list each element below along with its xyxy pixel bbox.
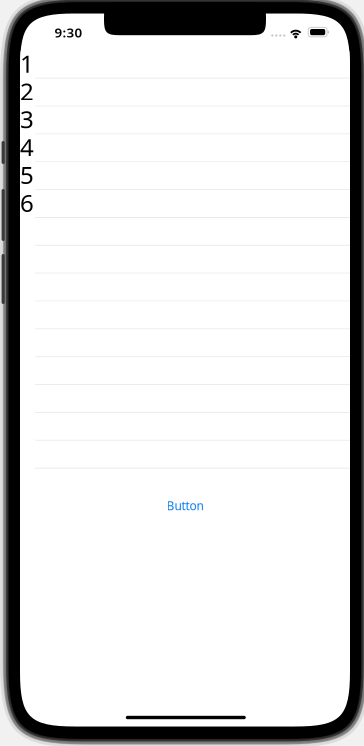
button[interactable]: 4 [20,134,350,162]
staticText: 3 [20,103,34,135]
button[interactable]: 1 [20,51,350,79]
staticText: 4 [20,131,34,163]
staticText: Button [166,498,203,513]
button[interactable]: 3 [20,107,350,134]
button[interactable]: 6 [20,190,350,218]
button[interactable]: 5 [20,162,350,190]
staticText: 9:30 [54,23,82,41]
button[interactable]: 2 [20,79,350,107]
staticText: 5 [20,159,34,191]
button[interactable]: Button [20,13,350,726]
staticText: 2 [20,75,34,107]
button[interactable] [20,357,350,385]
staticText: 1 [20,47,34,79]
button[interactable] [20,385,350,413]
staticText: 6 [20,187,34,218]
